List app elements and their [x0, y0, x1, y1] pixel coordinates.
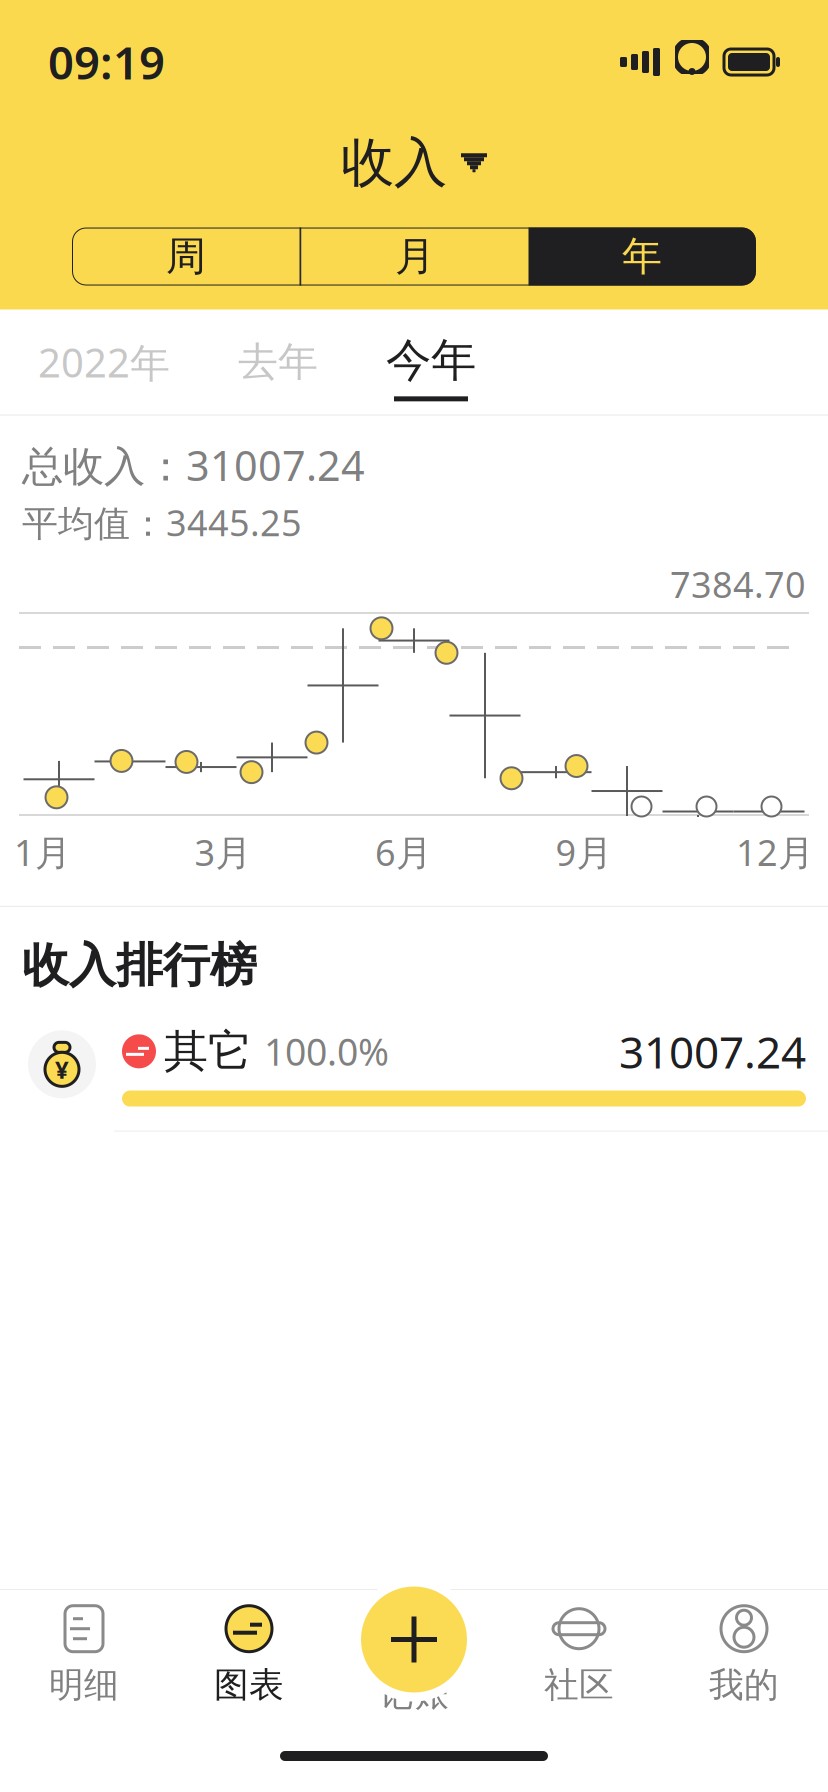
button[interactable]: 月 [301, 227, 528, 285]
staticText: 3月 [194, 828, 251, 876]
staticText: 总收入：31007.24 [22, 437, 365, 492]
button[interactable]: 年 [528, 227, 755, 285]
staticText: 收入 [341, 130, 447, 195]
staticText: 其它 [164, 1024, 252, 1078]
staticText: 我的 [709, 1664, 779, 1706]
staticText: 12月 [736, 828, 814, 876]
staticText: 明细 [49, 1664, 119, 1706]
staticText: 9月 [555, 828, 612, 876]
staticText: 社区 [544, 1664, 614, 1706]
staticText: 周 [166, 232, 206, 281]
staticText: 09:19 [48, 32, 165, 92]
button[interactable]: 今年 [374, 323, 488, 401]
staticText: 年 [622, 232, 662, 281]
button[interactable]: 社区 [496, 1590, 661, 1720]
staticText: 今年 [386, 333, 476, 388]
button[interactable]: 图表 [166, 1590, 331, 1720]
button[interactable]: 2022年 [22, 321, 186, 402]
staticText: 2022年 [38, 335, 170, 388]
staticText: 去年 [238, 337, 318, 386]
staticText: 记账 [379, 1673, 449, 1715]
staticText: 图表 [214, 1664, 284, 1706]
button[interactable]: 明细 [1, 1590, 166, 1720]
button[interactable]: 收入 [325, 124, 503, 201]
button[interactable]: 周 [72, 227, 299, 285]
staticText: 收入排行榜 [22, 937, 257, 994]
button[interactable]: 记账 [352, 1577, 476, 1701]
button[interactable]: 记账 [331, 1590, 496, 1720]
staticText: 31007.24 [619, 1022, 806, 1080]
staticText: 6月 [375, 828, 432, 876]
staticText: 7384.70 [670, 560, 806, 608]
button[interactable]: 去年 [222, 323, 334, 400]
staticText: ¥ [55, 1053, 69, 1085]
staticText: 平均值：3445.25 [22, 498, 302, 546]
button[interactable]: ¥ [0, 994, 828, 1130]
button[interactable]: 我的 [661, 1590, 826, 1720]
staticText: 月 [395, 232, 435, 281]
staticText: 1月 [14, 828, 71, 876]
staticText: 100.0% [264, 1027, 389, 1076]
